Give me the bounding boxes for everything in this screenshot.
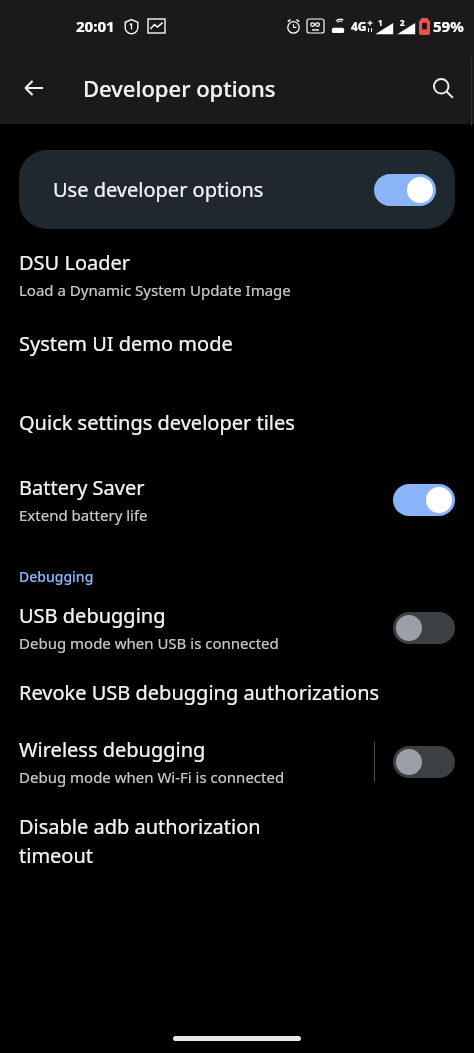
- staticText: Developer options: [83, 73, 276, 103]
- button[interactable]: Revoke USB debugging authorizations: [0, 677, 474, 708]
- button[interactable]: Quick settings developer tiles: [0, 407, 474, 438]
- button[interactable]: Battery Saver: [0, 474, 474, 525]
- staticText: 20:01: [76, 16, 115, 36]
- staticText: USB debugging: [19, 602, 166, 629]
- button[interactable]: On: [393, 484, 455, 516]
- button[interactable]: Wireless debugging: [0, 736, 474, 787]
- staticText: 2: [400, 17, 405, 28]
- staticText: Revoke USB debugging authorizations: [19, 679, 380, 706]
- staticText: Disable adb authorization: [19, 813, 261, 840]
- staticText: Wireless debugging: [19, 736, 206, 763]
- button[interactable]: Back: [10, 64, 58, 112]
- staticText: Battery Saver: [19, 474, 145, 501]
- button[interactable]: Off: [393, 612, 455, 644]
- button[interactable]: Search: [420, 65, 466, 111]
- staticText: 1: [378, 17, 383, 28]
- staticText: timeout: [19, 842, 94, 869]
- button[interactable]: On: [374, 174, 436, 206]
- staticText: Debugging: [19, 567, 94, 586]
- button[interactable]: Off: [393, 746, 455, 778]
- staticText: 4G: [351, 18, 367, 34]
- staticText: Load a Dynamic System Update Image: [19, 280, 291, 300]
- staticText: Debug mode when Wi-Fi is connected: [19, 767, 285, 787]
- button[interactable]: DSU Loader: [0, 249, 474, 300]
- staticText: Use developer options: [53, 176, 264, 203]
- staticText: 59%: [433, 16, 464, 36]
- button[interactable]: USB debugging: [0, 602, 474, 653]
- button[interactable]: System UI demo mode: [0, 328, 474, 359]
- staticText: System UI demo mode: [19, 330, 233, 357]
- staticText: Debug mode when USB is connected: [19, 633, 279, 653]
- staticText: DSU Loader: [19, 249, 131, 276]
- button[interactable]: Use developer options: [19, 150, 455, 229]
- button[interactable]: Disable adb authorization: [0, 813, 474, 869]
- staticText: Extend battery life: [19, 505, 148, 525]
- staticText: Quick settings developer tiles: [19, 409, 295, 436]
